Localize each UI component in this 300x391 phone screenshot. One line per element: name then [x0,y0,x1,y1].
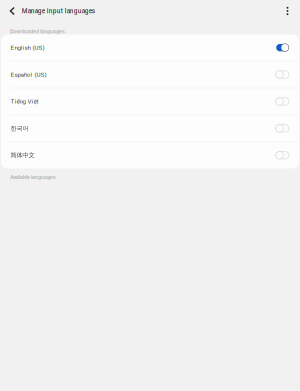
staticText: 한국어 [10,124,28,132]
button[interactable]: Tiếng Việt [1,88,299,115]
button[interactable]: More options [279,1,295,21]
staticText: English (US) [10,44,44,51]
button[interactable]: English (US) [1,34,299,61]
staticText: Available languages [10,174,56,180]
staticText: Español (US) [10,71,46,78]
staticText: 简体中文 [10,151,34,159]
button[interactable]: Back [3,1,21,21]
button[interactable]: 简体中文 [1,142,299,168]
button[interactable]: Español (US) [1,61,299,88]
button[interactable]: 한국어 [1,115,299,141]
staticText: Manage input languages [22,7,95,15]
staticText: Downloaded languages [10,28,65,34]
staticText: Tiếng Việt [10,98,38,105]
